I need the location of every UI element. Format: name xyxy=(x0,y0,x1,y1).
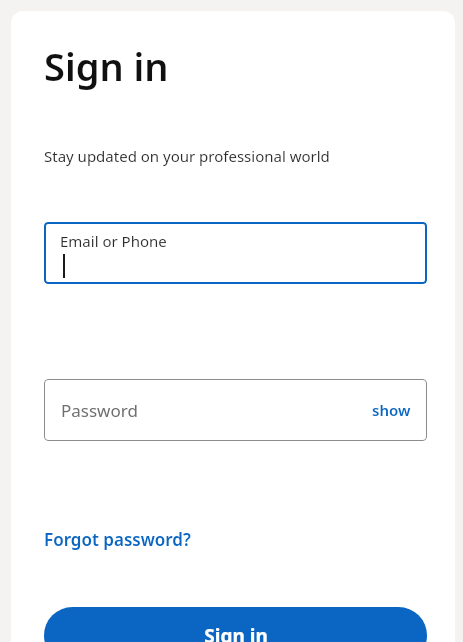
staticText: Email or Phone xyxy=(60,231,167,251)
staticText: Sign in xyxy=(204,623,268,642)
button[interactable]: Password xyxy=(44,379,427,441)
staticText: Forgot password? xyxy=(44,528,191,551)
button[interactable]: Sign in xyxy=(44,607,427,642)
staticText: Password xyxy=(61,399,138,422)
button[interactable]: Forgot password? xyxy=(40,525,195,554)
button[interactable]: Email or Phone xyxy=(44,222,427,284)
staticText: Sign in xyxy=(44,40,169,92)
button[interactable]: show xyxy=(364,396,419,424)
staticText: show xyxy=(372,400,411,420)
staticText: Stay updated on your professional world xyxy=(44,146,330,166)
